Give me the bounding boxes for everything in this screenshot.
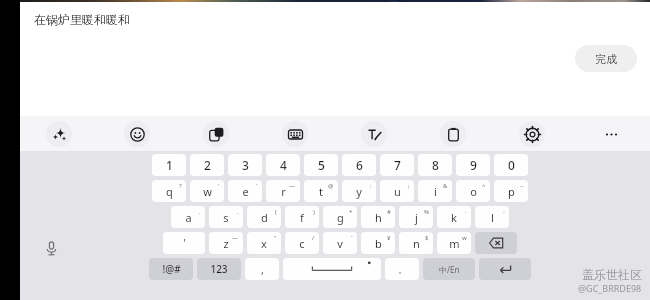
button[interactable]: j	[399, 206, 433, 228]
button[interactable]: Keyboard layout	[282, 121, 308, 147]
button[interactable]	[283, 258, 381, 280]
staticText: -	[503, 208, 505, 216]
staticText: s	[223, 210, 229, 225]
button[interactable]: n	[399, 232, 433, 254]
button[interactable]: o	[456, 180, 490, 202]
staticText: ~	[520, 182, 524, 190]
button[interactable]: g	[323, 206, 357, 228]
staticText: .	[237, 208, 239, 216]
staticText: $	[425, 234, 429, 242]
button[interactable]: 7	[380, 154, 414, 176]
staticText: 4	[280, 157, 287, 173]
button[interactable]: a	[171, 206, 205, 228]
button[interactable]: 。	[385, 258, 419, 280]
staticText: t	[319, 184, 323, 199]
button[interactable]: More options	[598, 121, 624, 147]
button[interactable]: v	[323, 232, 357, 254]
staticText: a	[185, 210, 192, 225]
button[interactable]: 3	[228, 154, 262, 176]
staticText: w	[462, 234, 467, 242]
staticText: n	[413, 236, 420, 251]
staticText: b	[375, 236, 382, 251]
staticText: k	[451, 210, 457, 225]
button[interactable]: 中/En	[423, 258, 475, 280]
button[interactable]: i	[418, 180, 452, 202]
staticText: ,	[261, 262, 264, 277]
button[interactable]: Magic compose	[46, 121, 72, 147]
button[interactable]: '	[163, 232, 205, 254]
staticText: 5	[318, 157, 325, 173]
button[interactable]: Emoji	[124, 121, 150, 147]
staticText: 在锅炉里暖和暖和	[34, 12, 130, 27]
staticText: 6	[356, 157, 363, 173]
button[interactable]: q	[152, 180, 186, 202]
staticText: %	[424, 208, 429, 216]
button[interactable]: Handwriting	[361, 121, 387, 147]
staticText: "	[274, 234, 277, 242]
button[interactable]: 9	[456, 154, 490, 176]
button[interactable]: k	[437, 206, 471, 228]
button[interactable]	[479, 258, 531, 280]
button[interactable]: 6	[342, 154, 376, 176]
staticText: e	[242, 184, 249, 199]
button[interactable]: 1	[152, 154, 186, 176]
button[interactable]: ,	[245, 258, 279, 280]
button[interactable]: Settings	[519, 121, 545, 147]
staticText: 8	[432, 157, 439, 173]
button[interactable]: w	[190, 180, 224, 202]
staticText: v	[337, 236, 343, 251]
button[interactable]: y	[342, 180, 376, 202]
button[interactable]: u	[380, 180, 414, 202]
button[interactable]: b	[361, 232, 395, 254]
button[interactable]: t	[304, 180, 338, 202]
button[interactable]: 0	[494, 154, 528, 176]
staticText: @	[328, 182, 334, 190]
staticText: j	[415, 210, 418, 225]
button[interactable]: 8	[418, 154, 452, 176]
button[interactable]	[475, 232, 517, 254]
staticText: l	[491, 210, 494, 225]
button[interactable]: x	[247, 232, 281, 254]
button[interactable]: !@#	[149, 258, 193, 280]
button[interactable]: Voice input	[38, 235, 64, 261]
button[interactable]: 123	[197, 258, 241, 280]
button[interactable]: Translate	[203, 121, 229, 147]
staticText: '	[218, 182, 220, 190]
button[interactable]: d	[247, 206, 281, 228]
staticText: —	[289, 182, 296, 190]
staticText: 9	[470, 157, 477, 173]
staticText: 7	[394, 157, 401, 173]
button[interactable]: s	[209, 206, 243, 228]
staticText: h	[375, 210, 382, 225]
button[interactable]: e	[228, 180, 262, 202]
button[interactable]: l	[475, 206, 509, 228]
staticText: ;	[408, 182, 410, 190]
button[interactable]: p	[494, 180, 528, 202]
staticText: u	[394, 184, 401, 199]
staticText: f	[300, 210, 304, 225]
staticText: g	[337, 210, 344, 225]
staticText: /	[312, 234, 315, 242]
staticText: (	[275, 208, 277, 216]
staticText: 2	[204, 157, 211, 173]
button[interactable]: 2	[190, 154, 224, 176]
staticText: ^	[482, 182, 486, 190]
button[interactable]: 4	[266, 154, 300, 176]
button[interactable]: f	[285, 206, 319, 228]
staticText: m	[449, 236, 460, 251]
staticText: w	[203, 184, 212, 199]
button[interactable]: h	[361, 206, 395, 228]
staticText: `	[256, 182, 258, 190]
button[interactable]: 完成	[575, 45, 637, 72]
button[interactable]: 5	[304, 154, 338, 176]
staticText: z	[223, 236, 229, 251]
button[interactable]: r	[266, 180, 300, 202]
staticText: i	[434, 184, 437, 199]
button[interactable]: m	[437, 232, 471, 254]
staticText: —	[232, 234, 239, 242]
button[interactable]: c	[285, 232, 319, 254]
button[interactable]: z	[209, 232, 243, 254]
staticText: r	[281, 184, 286, 199]
button[interactable]: Clipboard	[440, 121, 466, 147]
staticText: @GC_BRRDE98	[578, 282, 642, 294]
